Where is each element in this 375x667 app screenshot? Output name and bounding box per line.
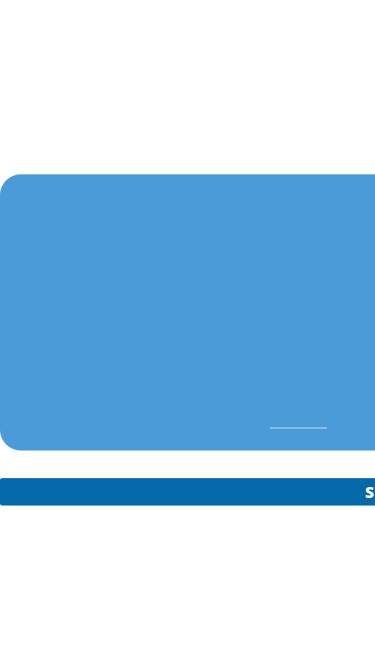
staticText: Submit xyxy=(365,481,375,502)
button[interactable]: Featured card xyxy=(0,174,375,450)
button[interactable]: Submit xyxy=(0,478,375,505)
